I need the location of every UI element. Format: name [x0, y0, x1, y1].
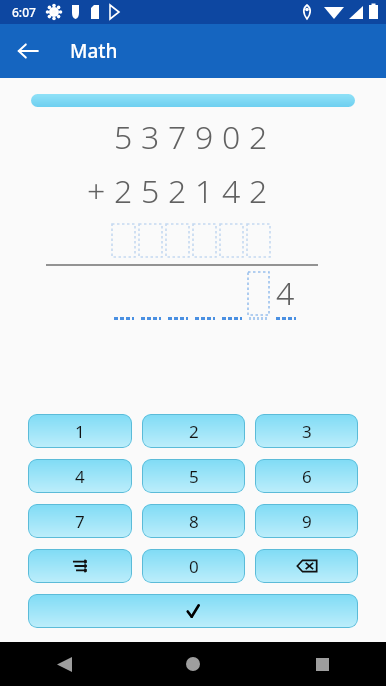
staticText: 2	[189, 420, 199, 443]
staticText: 2	[249, 169, 268, 213]
staticText: 2	[249, 115, 268, 159]
staticText: 5	[114, 115, 133, 159]
button[interactable]: Back	[44, 644, 84, 684]
button[interactable]: 3	[255, 414, 358, 448]
staticText: 9	[195, 115, 214, 159]
button[interactable]: Carry	[28, 549, 132, 583]
button[interactable]: Back	[6, 29, 50, 73]
staticText: +	[87, 169, 106, 213]
staticText: 1	[195, 169, 214, 213]
button[interactable]: 9	[255, 504, 358, 538]
staticText: 8	[189, 510, 199, 533]
button[interactable]: Confirm	[28, 594, 358, 628]
staticText: Math	[70, 38, 118, 64]
button[interactable]: 1	[28, 414, 132, 448]
staticText: 0	[189, 555, 199, 578]
staticText: 2	[168, 169, 187, 213]
button[interactable]: 2	[142, 414, 245, 448]
staticText: 7	[75, 510, 85, 533]
button[interactable]: Recents	[302, 644, 342, 684]
button[interactable]: 5	[142, 459, 245, 493]
staticText: 9	[302, 510, 312, 533]
button[interactable]: Home	[173, 644, 213, 684]
staticText: 4	[276, 271, 295, 315]
button[interactable]: 7	[28, 504, 132, 538]
staticText: 2	[114, 169, 133, 213]
staticText: 6	[302, 465, 312, 488]
staticText: 0	[222, 115, 241, 159]
button[interactable]: 6	[255, 459, 358, 493]
staticText: 3	[302, 420, 312, 443]
button[interactable]: 0	[142, 549, 245, 583]
button[interactable]: 4	[28, 459, 132, 493]
staticText: 3	[141, 115, 160, 159]
staticText: 1	[75, 420, 85, 443]
staticText: 5	[141, 169, 160, 213]
staticText: 4	[222, 169, 241, 213]
staticText: 6:07	[12, 4, 36, 20]
button[interactable]: 8	[142, 504, 245, 538]
staticText: 4	[75, 465, 85, 488]
button[interactable]: Backspace	[255, 549, 358, 583]
staticText: 5	[189, 465, 199, 488]
staticText: 7	[168, 115, 187, 159]
